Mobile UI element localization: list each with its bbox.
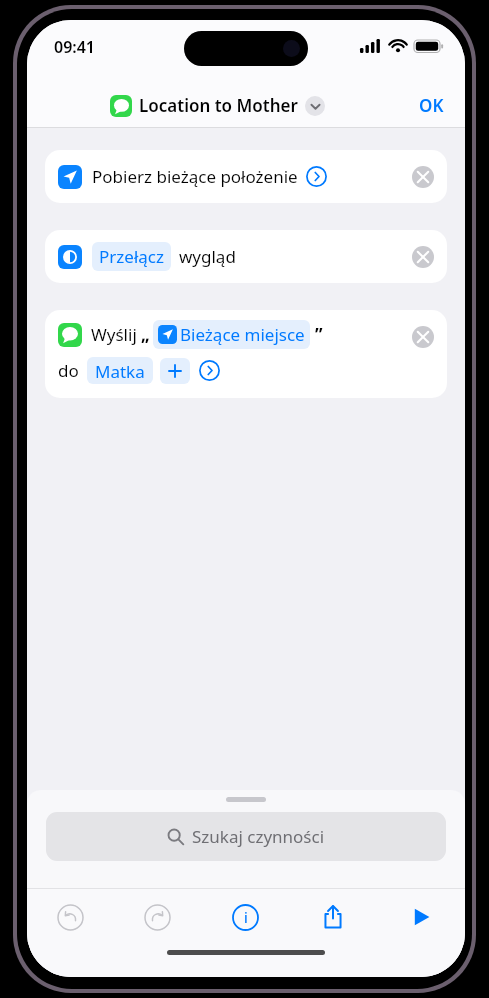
button[interactable]: Show details [199, 360, 220, 381]
button[interactable]: Undo [27, 889, 114, 945]
button[interactable]: Remove action [412, 166, 434, 188]
button[interactable]: Share [289, 889, 377, 945]
button[interactable]: Przełącz [45, 230, 447, 283]
button[interactable]: Remove action [412, 326, 434, 348]
button[interactable]: Remove action [412, 246, 434, 268]
button[interactable]: OK [409, 87, 465, 124]
button[interactable]: Przełącz [92, 242, 171, 271]
staticText: wygląd [179, 245, 236, 268]
button[interactable]: Run [377, 889, 465, 945]
staticText: Szukaj czynności [192, 825, 325, 848]
staticText: Matka [95, 360, 145, 381]
button[interactable]: Pobierz bieżące położenie [45, 150, 447, 203]
button[interactable]: Show details [306, 166, 327, 187]
staticText: 09:41 [54, 36, 96, 58]
button[interactable]: Info [201, 889, 289, 945]
staticText: Pobierz bieżące położenie [92, 165, 298, 188]
staticText: ” [315, 323, 323, 346]
button[interactable]: Bieżące miejsce [153, 320, 310, 349]
button[interactable]: Redo [114, 889, 201, 945]
staticText: Wyślij [91, 323, 137, 346]
staticText: do [58, 359, 79, 382]
button[interactable]: Szukaj czynności [46, 812, 446, 861]
button[interactable]: Location to Mother [106, 91, 329, 120]
staticText: OK [419, 94, 444, 117]
staticText: „ [141, 323, 150, 346]
button[interactable]: Add recipient [160, 358, 190, 384]
staticText: Bieżące miejsce [180, 323, 305, 346]
staticText: Przełącz [99, 245, 164, 268]
button[interactable]: Matka [87, 357, 153, 384]
staticText: Location to Mother [139, 94, 298, 117]
button[interactable]: Wyślij [45, 310, 447, 398]
staticText: i [244, 908, 248, 927]
